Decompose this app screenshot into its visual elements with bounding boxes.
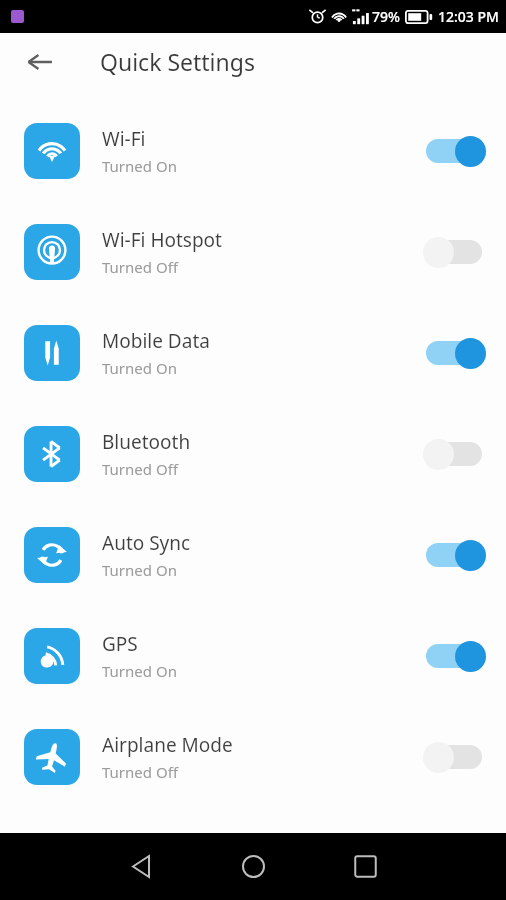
- button[interactable]: Back: [104, 833, 178, 900]
- button[interactable]: Recents: [328, 833, 402, 900]
- staticText: Wi-Fi: [102, 126, 146, 152]
- button[interactable]: Turn off: [422, 332, 486, 374]
- staticText: Turned On: [102, 661, 177, 681]
- button[interactable]: Back: [17, 39, 63, 85]
- staticText: 79%: [372, 7, 400, 26]
- button[interactable]: Auto Sync: [0, 504, 506, 605]
- staticText: Turned On: [102, 560, 177, 580]
- button[interactable]: Wi-Fi: [0, 100, 506, 201]
- button[interactable]: Turn off: [422, 534, 486, 576]
- staticText: Turned On: [102, 156, 177, 176]
- staticText: Turned Off: [102, 762, 178, 782]
- button[interactable]: Turn on: [422, 231, 486, 273]
- staticText: Turned Off: [102, 257, 178, 277]
- button[interactable]: Turn on: [422, 433, 486, 475]
- staticText: Airplane Mode: [102, 732, 233, 758]
- staticText: 12:03 PM: [438, 7, 499, 26]
- staticText: Auto Sync: [102, 530, 191, 556]
- staticText: Wi-Fi Hotspot: [102, 227, 222, 253]
- staticText: Turned Off: [102, 459, 178, 479]
- button[interactable]: Airplane Mode: [0, 706, 506, 807]
- button[interactable]: Home: [216, 833, 290, 900]
- button[interactable]: Turn off: [422, 130, 486, 172]
- staticText: Quick Settings: [100, 46, 255, 77]
- button[interactable]: Turn on: [422, 736, 486, 778]
- button[interactable]: Wi-Fi Hotspot: [0, 201, 506, 302]
- button[interactable]: Mobile Data: [0, 302, 506, 403]
- staticText: Mobile Data: [102, 328, 210, 354]
- button[interactable]: Bluetooth: [0, 403, 506, 504]
- staticText: Bluetooth: [102, 429, 191, 455]
- staticText: Turned On: [102, 358, 177, 378]
- button[interactable]: Turn off: [422, 635, 486, 677]
- staticText: GPS: [102, 631, 138, 657]
- button[interactable]: GPS: [0, 605, 506, 706]
